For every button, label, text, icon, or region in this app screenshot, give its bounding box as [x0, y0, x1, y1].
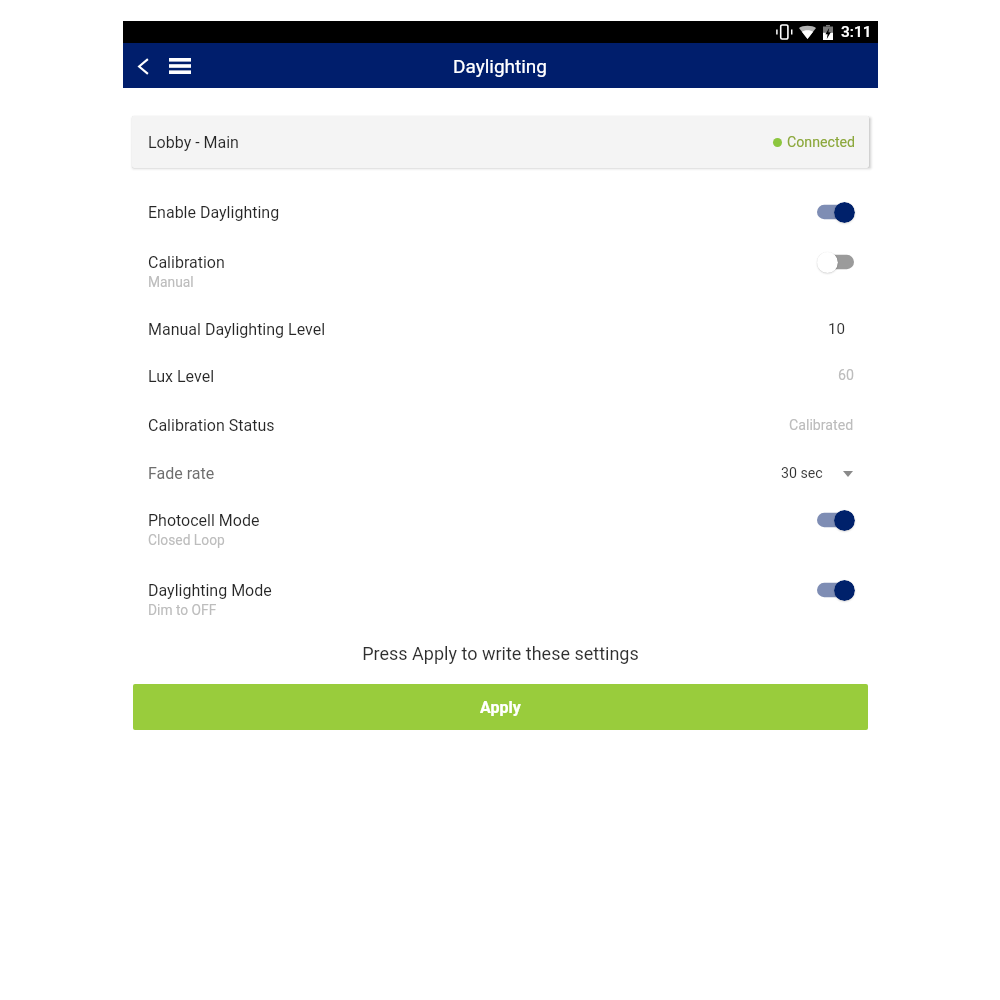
staticText: Photocell Mode — [148, 511, 260, 530]
staticText: Daylighting Mode — [148, 581, 272, 600]
button[interactable]: Calibration — [817, 248, 854, 276]
staticText: 3:11 — [841, 23, 872, 41]
staticText: Calibrated — [789, 417, 854, 434]
button[interactable]: Lobby - Main — [132, 116, 869, 168]
button[interactable]: Enable Daylighting — [123, 194, 878, 238]
staticText: 60 — [838, 367, 854, 384]
staticText: Closed Loop — [148, 532, 225, 548]
staticText: Lux Level — [148, 367, 215, 386]
button[interactable]: Enable Daylighting — [817, 198, 854, 226]
staticText: Manual Daylighting Level — [148, 320, 326, 339]
button[interactable]: Fade rate — [123, 455, 878, 499]
button[interactable]: Back — [126, 49, 160, 83]
staticText: Calibration Status — [148, 416, 275, 435]
button[interactable]: Photocell Mode — [817, 506, 854, 534]
button[interactable]: Daylighting Mode — [817, 576, 854, 604]
staticText: Lobby - Main — [148, 133, 239, 152]
staticText: Calibration — [148, 253, 225, 272]
staticText: Apply — [480, 698, 521, 717]
staticText: Press Apply to write these settings — [123, 643, 878, 664]
staticText: 30 sec — [781, 465, 823, 482]
button[interactable]: Calibration Status — [123, 407, 878, 451]
staticText: Connected — [787, 134, 856, 151]
staticText: Fade rate — [148, 464, 215, 483]
button[interactable]: Manual Daylighting Level — [123, 311, 878, 355]
button[interactable]: Photocell Mode — [123, 502, 878, 562]
staticText: Daylighting — [453, 55, 548, 77]
button[interactable]: Daylighting Mode — [123, 572, 878, 632]
button[interactable]: Calibration — [123, 244, 878, 304]
staticText: Enable Daylighting — [148, 203, 280, 222]
button[interactable]: Fade rate — [771, 462, 863, 485]
staticText: 10 — [828, 320, 846, 338]
button[interactable]: Menu — [163, 49, 197, 83]
staticText: Manual — [148, 274, 194, 290]
button[interactable]: Apply — [133, 684, 868, 730]
button[interactable]: Lux Level — [123, 358, 878, 402]
staticText: Dim to OFF — [148, 602, 217, 618]
